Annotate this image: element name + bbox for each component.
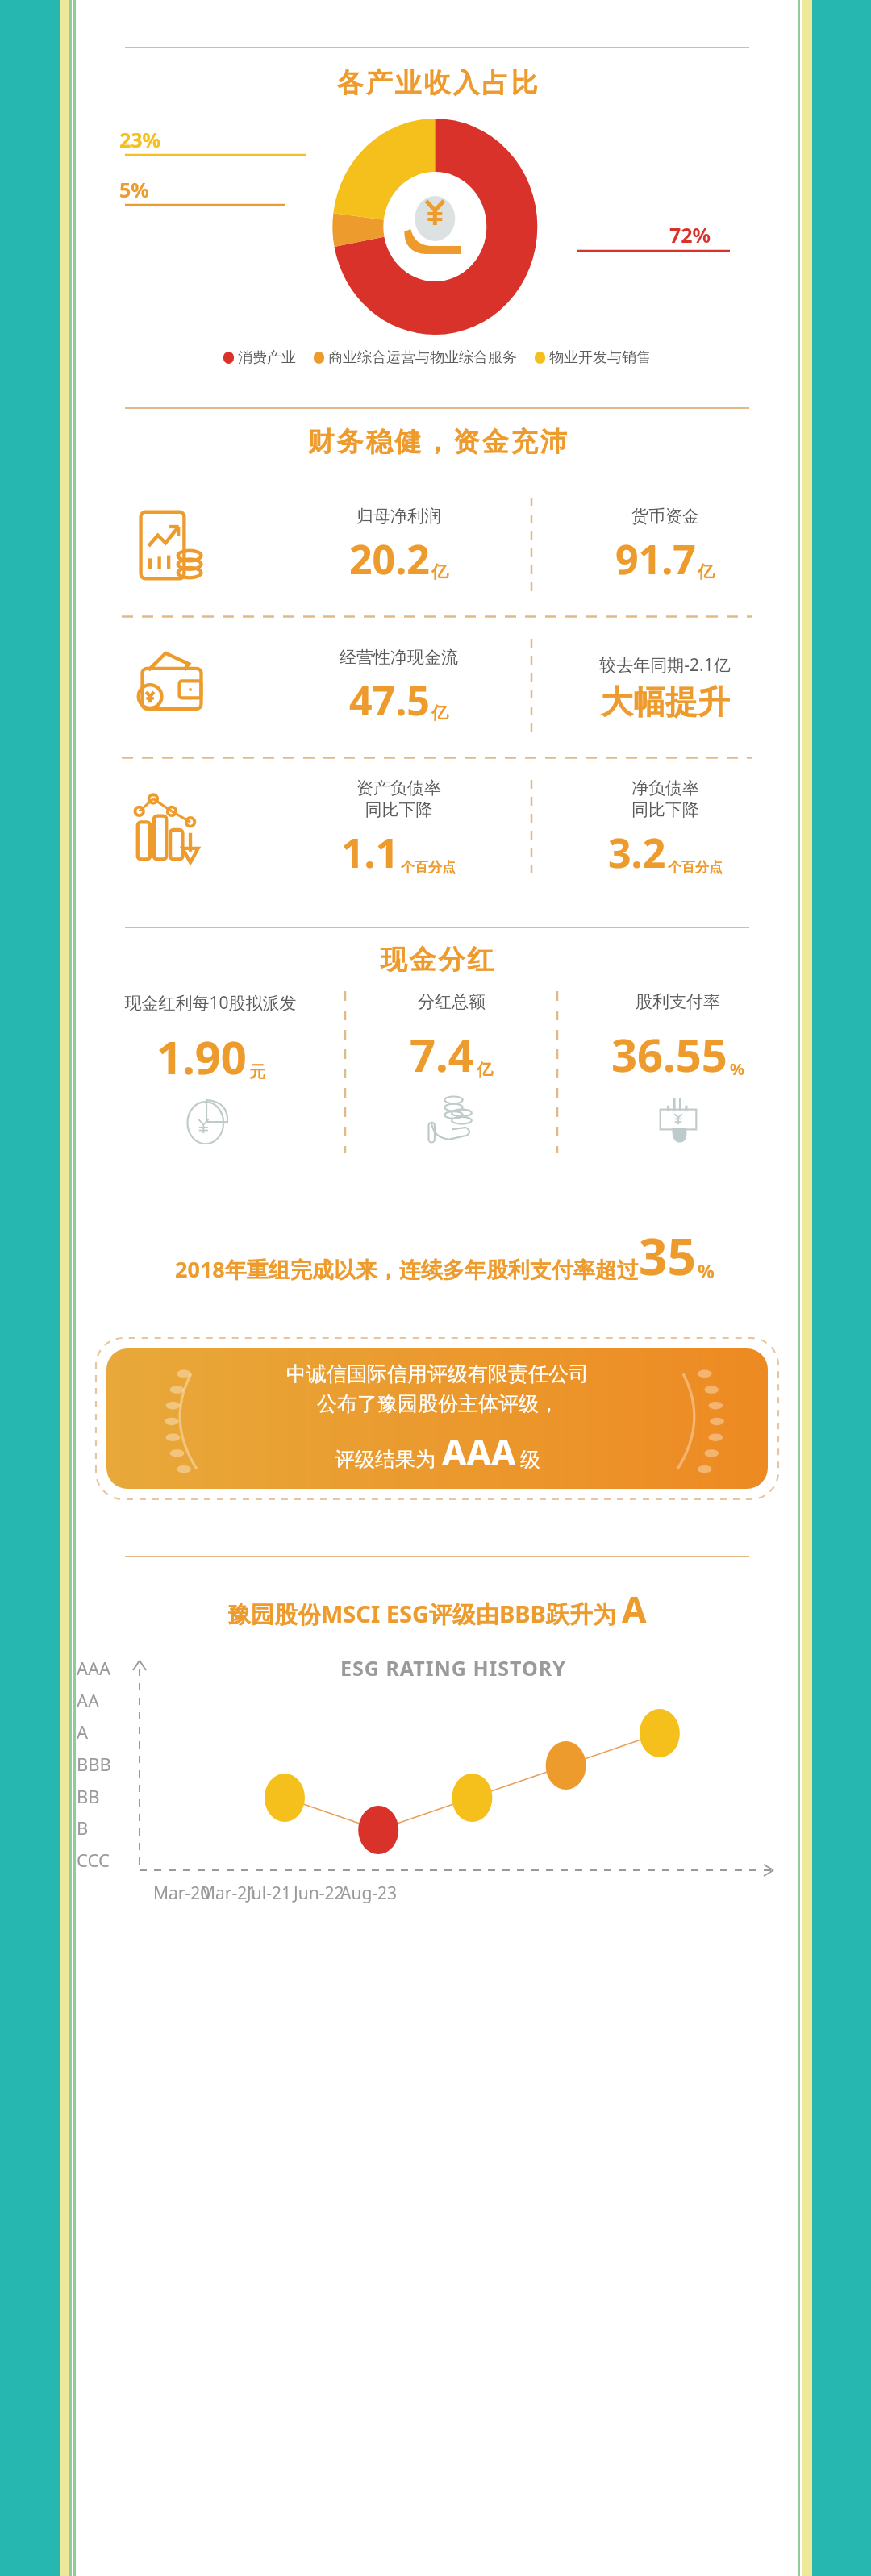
staticText: 47.5 [349, 673, 430, 727]
staticText: 72% [669, 221, 711, 248]
staticText: 经营性净现金流 [340, 647, 458, 668]
staticText: 2018年重组完成以来，连续多年股利支付率超过 [175, 1254, 639, 1284]
button[interactable]: 中诚信国际信用评级有限责任公司 [106, 1348, 768, 1489]
staticText: 3.2 [608, 825, 666, 880]
staticText: 亿 [431, 561, 448, 582]
staticText: BB [77, 1784, 100, 1808]
button[interactable]: 经营性净现金流 [77, 618, 798, 757]
staticText: AAA [442, 1428, 516, 1476]
staticText: 较去年同期-2.1亿 [599, 653, 731, 677]
staticText: 大幅提升 [601, 682, 730, 722]
staticText: 亿 [698, 561, 715, 582]
staticText: 分红总额 [418, 991, 486, 1012]
staticText: 1.90 [156, 1026, 247, 1087]
staticText: 商业综合运营与物业综合服务 [328, 348, 517, 367]
staticText: 5% [119, 176, 149, 203]
button[interactable]: 现金红利每10股拟派发 [77, 991, 344, 1193]
staticText: 资产负债率 同比下降 [356, 777, 441, 820]
staticText: 物业开发与销售 [549, 348, 651, 367]
staticText: 消费产业 [238, 348, 296, 367]
staticText: 36.55 [611, 1023, 727, 1085]
staticText: Mar-20 [153, 1882, 210, 1905]
button[interactable]: 物业开发与销售 [535, 348, 651, 367]
staticText: Aug-23 [340, 1882, 398, 1905]
button[interactable]: 资产负债率 同比下降 [77, 759, 798, 898]
staticText: 个百分点 [668, 859, 723, 876]
button[interactable]: 归母净利润 [77, 477, 798, 615]
staticText: 净负债率 同比下降 [631, 777, 699, 820]
staticText: Jul-21 [247, 1882, 291, 1905]
staticText: 级 [520, 1447, 540, 1472]
staticText: 现金分红 [379, 943, 495, 977]
staticText: AA [77, 1688, 100, 1712]
staticText: 个百分点 [401, 859, 456, 876]
staticText: ESG RATING HISTORY [340, 1654, 566, 1682]
button[interactable]: 分红总额 [346, 991, 556, 1193]
staticText: 各产业收入占比 [335, 66, 539, 100]
staticText: % [698, 1258, 715, 1283]
button[interactable]: 股利支付率 [558, 991, 798, 1193]
staticText: 91.7 [615, 531, 696, 586]
staticText: 亿 [431, 702, 448, 723]
staticText: A [622, 1585, 647, 1633]
staticText: Mar-21 [200, 1882, 257, 1905]
staticText: 23% [119, 126, 161, 153]
staticText: A [77, 1719, 89, 1744]
staticText: 评级结果为 [335, 1447, 435, 1472]
staticText: B [77, 1815, 89, 1840]
staticText: 财务稳健，资金充沛 [306, 425, 568, 459]
staticText: 股利支付率 [636, 991, 720, 1012]
staticText: Jun-22 [294, 1882, 344, 1905]
staticText: 中诚信国际信用评级有限责任公司 [286, 1361, 589, 1386]
staticText: CCC [77, 1848, 110, 1872]
staticText: BBB [77, 1752, 111, 1776]
button[interactable]: 消费产业 [223, 348, 296, 367]
staticText: 亿 [477, 1060, 493, 1080]
staticText: % [730, 1058, 745, 1080]
staticText: 现金红利每10股拟派发 [124, 991, 297, 1015]
staticText: 公布了豫园股份主体评级， [317, 1391, 559, 1416]
staticText: AAA [77, 1656, 111, 1680]
staticText: 豫园股份MSCI ESG评级由BBB跃升为 [227, 1598, 616, 1630]
staticText: 35 [639, 1222, 696, 1290]
staticText: 20.2 [349, 531, 430, 586]
staticText: 归母净利润 [356, 506, 441, 527]
staticText: 7.4 [410, 1023, 474, 1085]
staticText: 货币资金 [631, 506, 699, 527]
button[interactable]: 商业综合运营与物业综合服务 [314, 348, 517, 367]
staticText: 1.1 [341, 825, 399, 880]
staticText: 元 [249, 1062, 265, 1082]
